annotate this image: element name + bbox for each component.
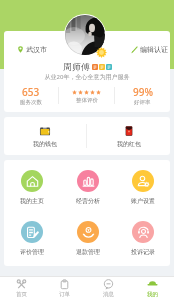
button[interactable]: 我的钱包	[4, 125, 86, 148]
staticText: 整体评价	[76, 97, 98, 104]
staticText: 退款管理	[76, 248, 100, 256]
staticText: 首页	[16, 291, 27, 298]
button[interactable]: 武汉市	[17, 45, 47, 54]
staticText: 我的主页	[20, 197, 44, 205]
staticText: 投诉记录	[131, 248, 155, 256]
button[interactable]: 经营分析	[60, 170, 115, 205]
button[interactable]: 投诉记录	[115, 221, 170, 256]
button[interactable]: 我的主页	[4, 170, 60, 205]
staticText: 我的红包	[117, 140, 141, 148]
button[interactable]: 我的红包	[87, 125, 170, 148]
button[interactable]: 评价管理	[4, 221, 60, 256]
button[interactable]: 首页	[0, 279, 43, 298]
staticText: 653	[22, 85, 40, 99]
staticText: 服务次数	[20, 99, 42, 106]
staticText: 账户设置	[131, 197, 155, 205]
staticText: 编辑认证	[140, 45, 168, 54]
staticText: 99%	[133, 85, 153, 99]
staticText: 武汉市	[26, 45, 47, 54]
staticText: 我的钱包	[33, 140, 57, 148]
staticText: 从业20年，全心全意为用户服务	[4, 73, 170, 81]
button[interactable]: 退款管理	[60, 221, 115, 256]
staticText: 消息	[103, 291, 114, 298]
button[interactable]: 我的	[130, 279, 174, 298]
staticText: 订单	[59, 291, 70, 298]
staticText: 经营分析	[76, 197, 100, 205]
button[interactable]: 账户设置	[115, 170, 170, 205]
staticText: 好评率	[134, 99, 151, 106]
button[interactable]: 订单	[43, 279, 86, 298]
staticText: 我的	[147, 291, 158, 298]
staticText: 评价管理	[20, 248, 44, 256]
staticText: 周师傅	[63, 61, 90, 72]
button[interactable]: 消息	[86, 279, 130, 298]
button[interactable]: 编辑认证	[131, 45, 168, 54]
